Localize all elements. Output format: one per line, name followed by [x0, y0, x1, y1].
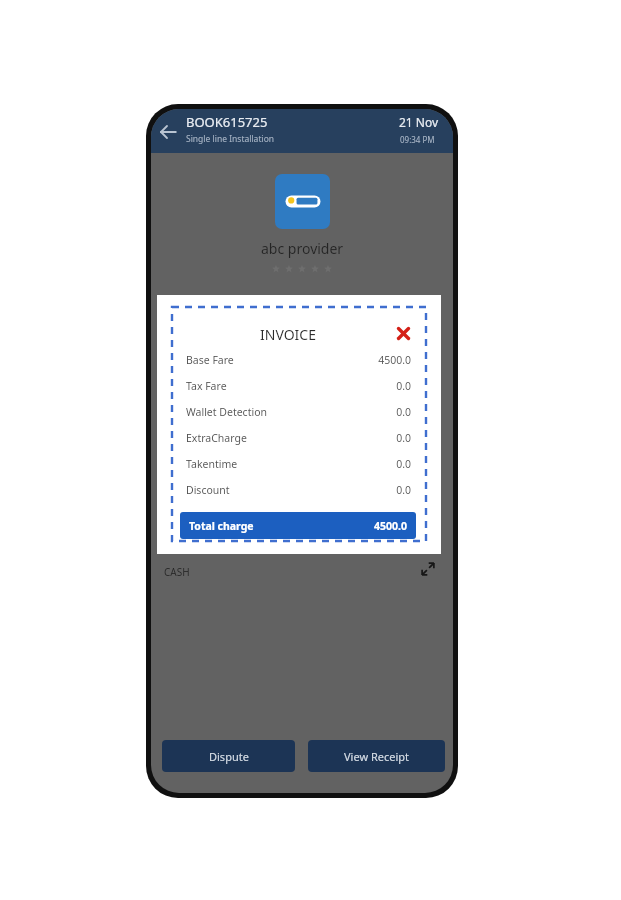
staticText: View Receipt	[344, 749, 410, 764]
staticText: Tax Fare	[186, 379, 227, 393]
staticText: CASH	[164, 565, 190, 579]
staticText: Discount	[186, 483, 230, 497]
staticText: Single line Installation	[186, 133, 275, 145]
staticText: Wallet Detection	[186, 405, 267, 419]
staticText: Dispute	[209, 749, 249, 764]
staticText: 0.0	[353, 483, 411, 497]
button[interactable]: Back	[154, 118, 182, 146]
staticText: Base Fare	[186, 353, 234, 367]
staticText: 0.0	[353, 431, 411, 445]
staticText: 0.0	[353, 457, 411, 471]
button[interactable]: Expand	[421, 562, 435, 576]
button[interactable]: Dispute	[162, 740, 295, 772]
staticText: abc provider	[261, 239, 344, 258]
staticText: 21 Nov	[399, 114, 439, 130]
staticText: 4500.0	[353, 353, 411, 367]
staticText: 0.0	[353, 379, 411, 393]
staticText: ExtraCharge	[186, 431, 247, 445]
staticText: INVOICE	[260, 325, 316, 344]
staticText: 4500.0	[374, 519, 407, 533]
staticText: 09:34 PM	[400, 134, 435, 145]
staticText: Takentime	[186, 457, 238, 471]
button[interactable]: Total charge	[180, 512, 416, 539]
staticText: 0.0	[353, 405, 411, 419]
staticText: BOOK615725	[186, 113, 268, 131]
button[interactable]: View Receipt	[308, 740, 445, 772]
staticText: Total charge	[189, 519, 254, 533]
button[interactable]: Close	[391, 321, 415, 345]
